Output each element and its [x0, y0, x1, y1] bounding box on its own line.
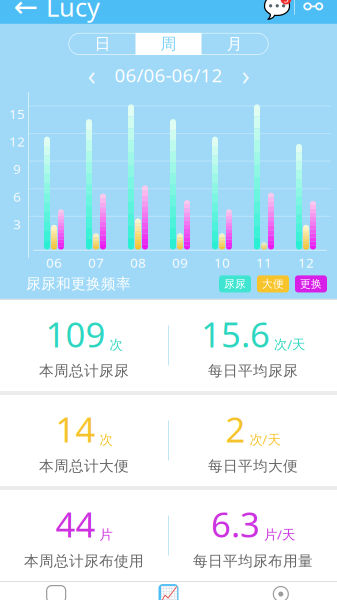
staticText: 💬 — [263, 0, 291, 20]
button[interactable]: Next week — [228, 62, 262, 88]
button[interactable]: Back — [6, 0, 46, 24]
staticText: 日 — [94, 34, 110, 54]
staticText: 每日平均尿尿 — [208, 362, 298, 380]
staticText: 06 — [46, 254, 62, 271]
staticText: 尿尿和更换频率 — [26, 275, 131, 293]
staticText: 44 — [55, 501, 95, 547]
staticText: 大便 — [262, 277, 284, 290]
staticText: 次/天 — [249, 430, 280, 448]
staticText: 本周总计尿尿 — [39, 362, 129, 380]
button[interactable]: Members — [295, 0, 331, 24]
staticText: ← — [13, 0, 38, 24]
staticText: 07 — [88, 254, 104, 271]
staticText: › — [241, 57, 249, 93]
staticText: 15 — [9, 105, 25, 123]
button[interactable]: 月 — [201, 33, 267, 55]
button[interactable]: 📈 — [112, 577, 225, 600]
staticText: 次 — [109, 337, 122, 353]
staticText: 尿尿 — [224, 277, 246, 290]
staticText: 15.6 — [201, 311, 270, 357]
staticText: 片 — [99, 527, 112, 543]
staticText: 6.3 — [211, 501, 260, 547]
button[interactable]: 周 — [135, 33, 201, 55]
staticText: 3 — [283, 0, 288, 5]
button[interactable]: 日 — [69, 33, 135, 55]
staticText: 06/06-06/12 — [114, 62, 222, 87]
button[interactable]: 尿布 — [0, 577, 112, 600]
staticText: 9 — [13, 160, 21, 178]
staticText: ‹ — [87, 57, 95, 93]
staticText: 周 — [160, 34, 176, 54]
staticText: 109 — [45, 311, 105, 357]
staticText: 片/天 — [264, 525, 295, 543]
staticText: 09 — [172, 254, 188, 271]
staticText: 本周总计尿布使用 — [24, 552, 144, 570]
staticText: 6 — [13, 188, 21, 205]
staticText: 月 — [226, 34, 242, 54]
staticText: 次 — [99, 432, 112, 448]
staticText: 10 — [214, 254, 230, 271]
staticText: 3 — [13, 215, 21, 233]
staticText: 2 — [225, 406, 245, 452]
staticText: 更换 — [300, 277, 322, 290]
staticText: ⚯ — [303, 0, 323, 20]
staticText: 次/天 — [274, 335, 305, 353]
staticText: 📈 — [159, 586, 177, 600]
staticText: 每日平均大便 — [208, 457, 298, 475]
staticText: 14 — [55, 406, 95, 452]
staticText: 本周总计大便 — [39, 457, 129, 475]
button[interactable]: Previous week — [74, 62, 108, 88]
staticText: 每日平均尿布用量 — [193, 552, 313, 570]
staticText: 11 — [256, 254, 272, 271]
staticText: 12 — [298, 254, 314, 271]
button[interactable]: 防丢 — [225, 577, 337, 600]
staticText: Lucy — [46, 0, 100, 24]
staticText: 12 — [9, 132, 25, 150]
staticText: 08 — [130, 254, 146, 271]
button[interactable]: Messages — [260, 0, 294, 24]
